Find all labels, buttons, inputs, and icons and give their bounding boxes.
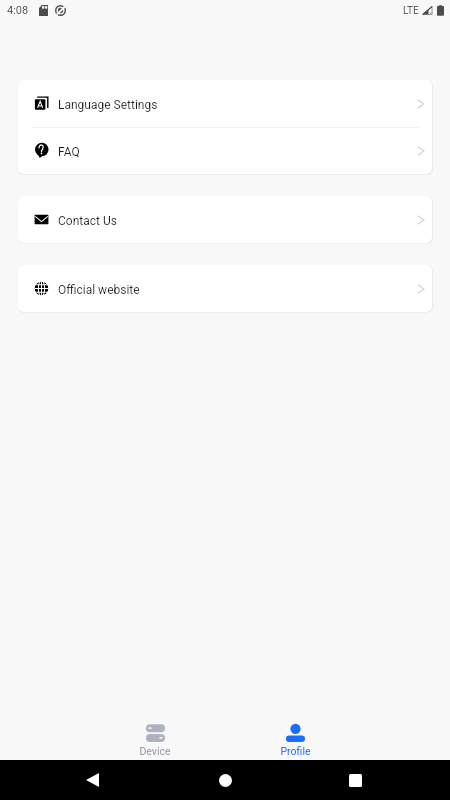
staticText: Language Settings: [58, 98, 158, 112]
button[interactable]: Home: [210, 765, 240, 795]
button[interactable]: Profile: [225, 700, 365, 760]
button[interactable]: Language Settings: [18, 80, 432, 127]
button[interactable]: Device: [85, 700, 225, 760]
button[interactable]: FAQ: [18, 127, 432, 174]
staticText: 4:08: [7, 4, 29, 17]
staticText: Profile: [280, 745, 311, 757]
staticText: FAQ: [58, 145, 80, 159]
button[interactable]: Back: [77, 765, 107, 795]
button[interactable]: Contact Us: [18, 196, 432, 243]
staticText: LTE: [403, 5, 419, 17]
button[interactable]: Official website: [18, 265, 432, 312]
button[interactable]: Recent apps: [340, 765, 370, 795]
staticText: Device: [139, 745, 171, 757]
staticText: Official website: [58, 283, 140, 297]
staticText: Contact Us: [58, 214, 117, 228]
